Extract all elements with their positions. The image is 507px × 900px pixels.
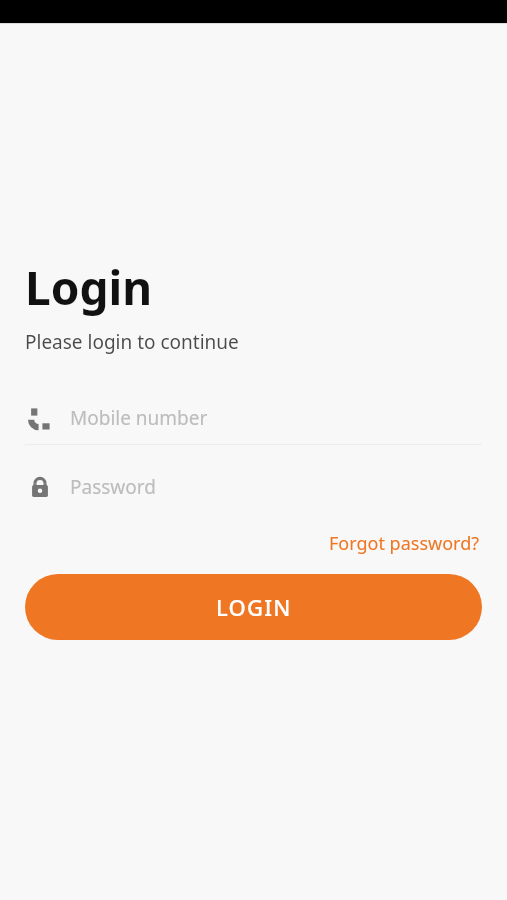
button[interactable]: LOGIN bbox=[25, 574, 482, 640]
staticText: Login bbox=[25, 256, 153, 319]
staticText: Forgot password? bbox=[329, 531, 480, 556]
other: Mobile number bbox=[28, 406, 52, 430]
staticText: Password bbox=[70, 474, 156, 500]
other: Password bbox=[28, 475, 52, 499]
button[interactable]: Password bbox=[0, 461, 507, 513]
button[interactable]: Forgot password? bbox=[327, 527, 482, 560]
button[interactable]: Mobile number bbox=[0, 392, 507, 445]
staticText: Please login to continue bbox=[25, 329, 239, 355]
staticText: LOGIN bbox=[216, 592, 292, 622]
staticText: Mobile number bbox=[70, 405, 208, 431]
